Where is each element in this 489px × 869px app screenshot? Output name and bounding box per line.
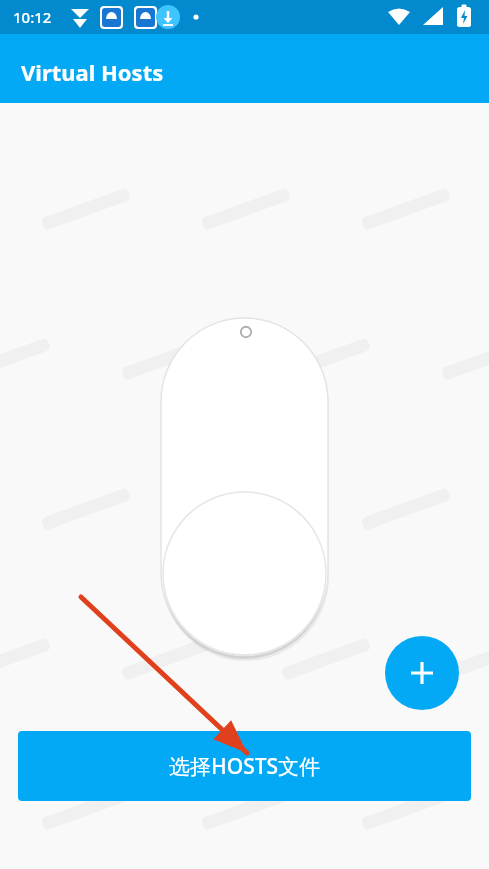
button[interactable]: 选择HOSTS文件 [18, 731, 471, 801]
staticText: Virtual Hosts [21, 57, 164, 87]
button[interactable]: Add host [385, 636, 459, 710]
staticText: 10:12 [13, 7, 52, 27]
staticText: 选择HOSTS文件 [169, 752, 321, 781]
